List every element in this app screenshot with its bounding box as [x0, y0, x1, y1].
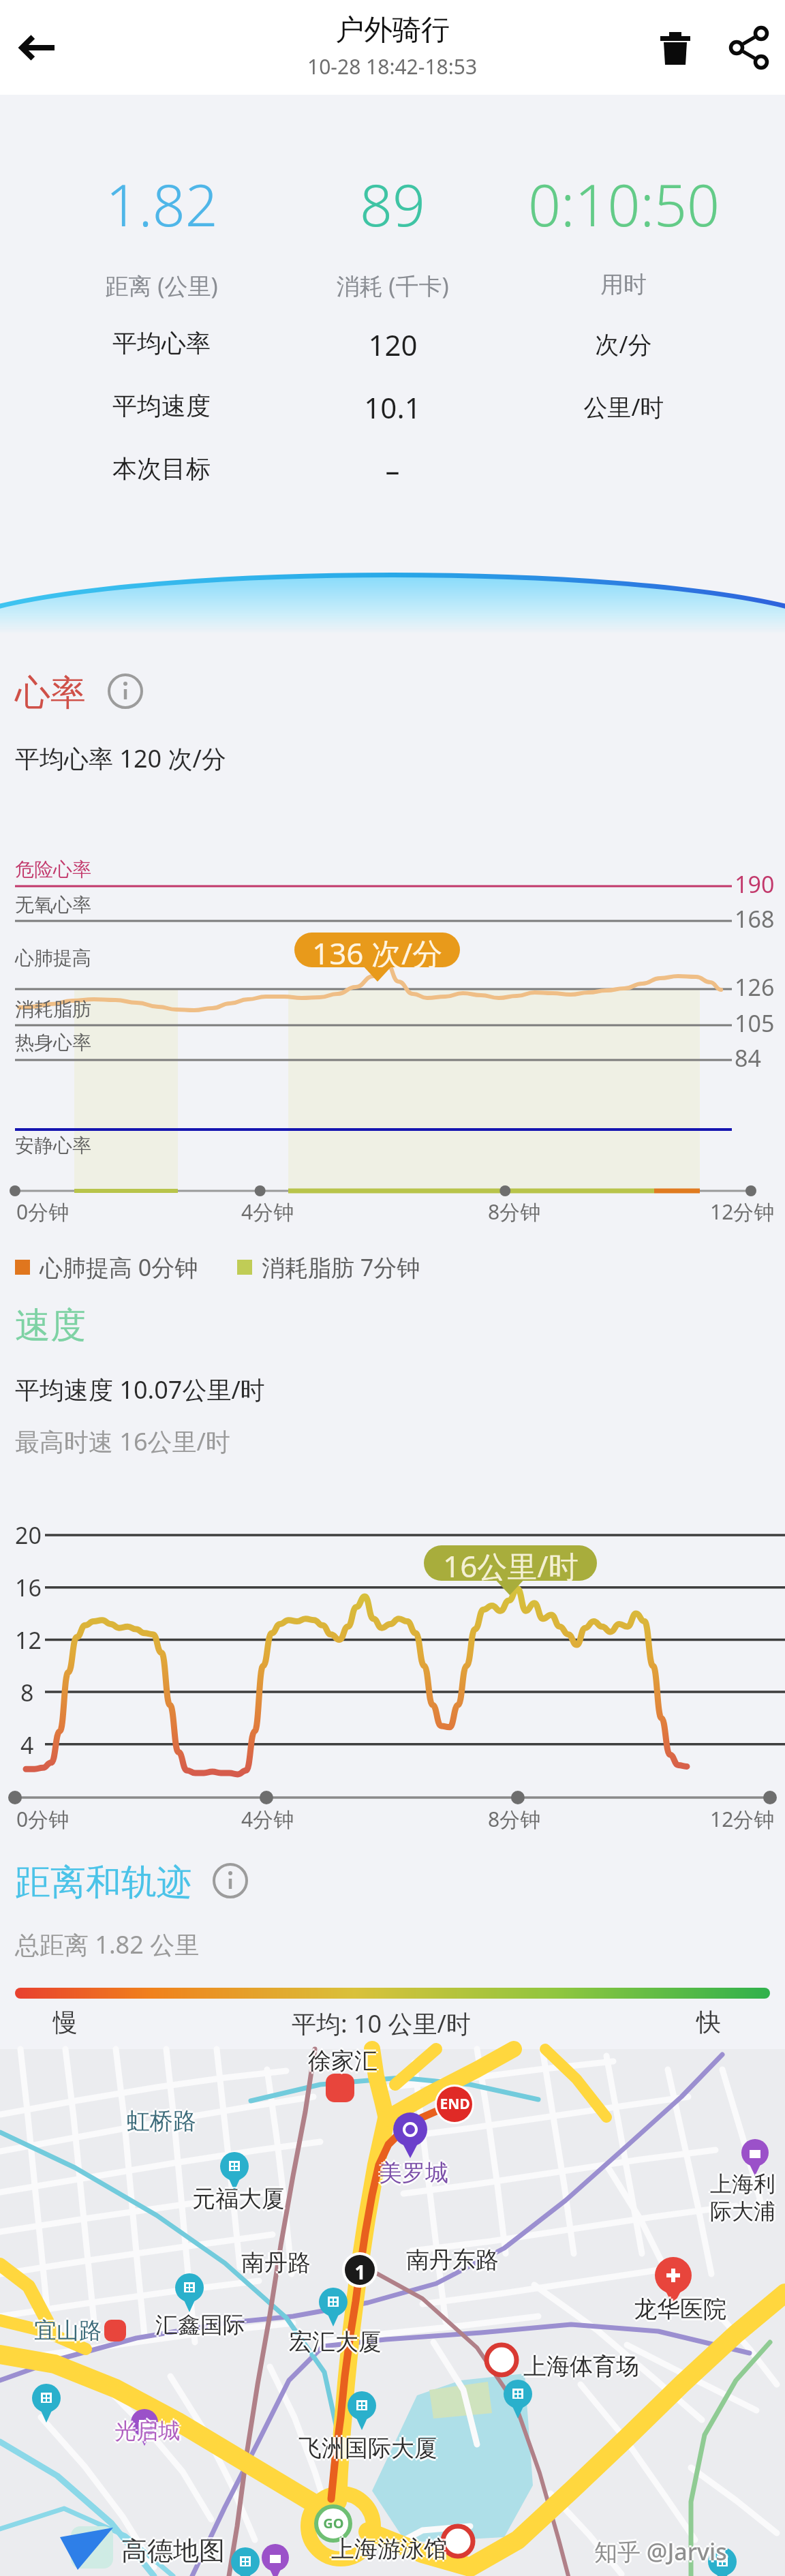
staticText: 上海体育场 [523, 2354, 639, 2383]
staticText: 0分钟 [16, 1805, 70, 1833]
staticText: 上海体育场 [521, 2352, 637, 2381]
staticText: 平均速度 [112, 391, 211, 421]
staticText: 南丹路 [241, 2250, 311, 2279]
staticText: 汇鑫国际 [155, 2313, 245, 2342]
staticText: 8分钟 [488, 1805, 541, 1833]
staticText: 1 [354, 2259, 366, 2285]
staticText: 消耗脂肪 7分钟 [262, 1252, 420, 1283]
staticText: 南丹东路 [406, 2243, 499, 2273]
staticText: 安静心率 [15, 1134, 91, 1157]
staticText: 飞洲国际大厦 [298, 2431, 437, 2461]
staticText: 宏汇大厦 [287, 2327, 380, 2357]
staticText: 南丹东路 [404, 2245, 497, 2275]
staticText: 距离和轨迹 [15, 1860, 192, 1905]
staticText: 慢 [53, 2007, 78, 2037]
staticText: 4分钟 [241, 1198, 294, 1226]
staticText: GO [323, 2514, 344, 2532]
staticText: 上海利 [710, 2168, 775, 2196]
staticText: 上海利 [710, 2172, 775, 2200]
staticText: 上海体育场 [525, 2352, 641, 2381]
button[interactable]: 距离和轨迹 [15, 1860, 192, 1905]
button[interactable]: Info [106, 672, 144, 710]
staticText: 徐家汇 [308, 2048, 378, 2078]
staticText: 光启城 [114, 2417, 180, 2444]
staticText: 徐家汇 [310, 2046, 380, 2076]
staticText: 际大浦 [708, 2198, 773, 2225]
staticText: 美罗城 [381, 2158, 450, 2187]
staticText: 168 [735, 903, 775, 935]
staticText: 户外骑行 [335, 12, 450, 48]
staticText: 平均: 10 公里/时 [292, 2007, 471, 2040]
staticText: 危险心率 [15, 858, 91, 881]
staticText: 105 [735, 1007, 775, 1039]
staticText: 0:10:50 [528, 165, 720, 243]
staticText: 汇鑫国际 [155, 2311, 245, 2339]
staticText: 心肺提高 0分钟 [40, 1252, 198, 1283]
staticText: 际大浦 [712, 2198, 778, 2225]
button[interactable]: Back [11, 20, 65, 75]
staticText: 虹桥路 [127, 2104, 196, 2134]
staticText: 16公里/时 [443, 1545, 579, 1581]
staticText: – [385, 451, 400, 489]
staticText: 10.1 [364, 388, 421, 427]
staticText: 0分钟 [16, 1198, 70, 1226]
staticText: 上海游泳馆 [331, 2532, 447, 2562]
staticText: 8 [20, 1677, 34, 1708]
staticText: 上海体育场 [523, 2350, 639, 2379]
staticText: 知乎 @Jarvis [592, 2536, 725, 2567]
staticText: 消耗脂肪 [15, 997, 91, 1021]
staticText: 16 [15, 1572, 42, 1603]
staticText: 上海利 [710, 2170, 775, 2198]
staticText: 知乎 @Jarvis [594, 2534, 727, 2565]
button[interactable]: Info [211, 1862, 249, 1900]
staticText: 知乎 @Jarvis [596, 2536, 729, 2567]
staticText: 美罗城 [379, 2156, 448, 2185]
staticText: 龙华医院 [634, 2292, 726, 2322]
staticText: 南丹路 [243, 2248, 313, 2277]
staticText: 徐家汇 [306, 2046, 375, 2076]
staticText: 次/分 [595, 328, 652, 361]
staticText: 高德地图 [119, 2534, 223, 2567]
staticText: 元福大厦 [192, 2182, 285, 2211]
button[interactable]: Share [719, 17, 780, 78]
staticText: 南丹东路 [406, 2247, 499, 2277]
staticText: 平均心率 [112, 328, 211, 359]
staticText: 宜山路 [34, 2318, 102, 2347]
staticText: 速度 [15, 1303, 86, 1348]
staticText: 飞洲国际大厦 [301, 2434, 440, 2463]
staticText: 宜山路 [36, 2316, 104, 2345]
staticText: 南丹东路 [408, 2245, 501, 2275]
staticText: 飞洲国际大厦 [298, 2436, 437, 2465]
staticText: 虹桥路 [129, 2106, 198, 2136]
staticText: 飞洲国际大厦 [298, 2434, 437, 2463]
staticText: 1.82 [106, 165, 218, 243]
staticText: 平均速度 10.07公里/时 [15, 1373, 265, 1406]
staticText: END [440, 2094, 470, 2114]
staticText: 徐家汇 [308, 2044, 378, 2074]
staticText: 宜山路 [32, 2316, 99, 2345]
staticText: 汇鑫国际 [153, 2311, 243, 2339]
button[interactable]: 速度 [15, 1303, 86, 1348]
staticText: 高德地图 [121, 2534, 225, 2567]
staticText: 上海利 [712, 2170, 778, 2198]
staticText: 光启城 [114, 2415, 180, 2442]
staticText: 高德地图 [121, 2536, 225, 2569]
staticText: 龙华医院 [634, 2294, 726, 2324]
button[interactable]: Route map [0, 2049, 785, 2576]
button[interactable]: Delete [645, 19, 706, 80]
staticText: 上海体育场 [523, 2352, 639, 2381]
staticText: 8分钟 [488, 1198, 541, 1226]
staticText: 南丹路 [241, 2248, 311, 2277]
staticText: 际大浦 [710, 2200, 775, 2227]
staticText: 心率 [15, 671, 86, 716]
button[interactable]: 心率 [15, 671, 86, 716]
staticText: 宜山路 [34, 2314, 102, 2343]
staticText: 快 [696, 2007, 721, 2037]
staticText: 上海游泳馆 [333, 2534, 449, 2564]
staticText: 虹桥路 [127, 2108, 196, 2138]
staticText: 无氧心率 [15, 893, 91, 917]
staticText: 美罗城 [377, 2158, 446, 2187]
staticText: 元福大厦 [192, 2184, 285, 2213]
staticText: 89 [360, 165, 425, 243]
staticText: 心肺提高 [15, 946, 91, 970]
